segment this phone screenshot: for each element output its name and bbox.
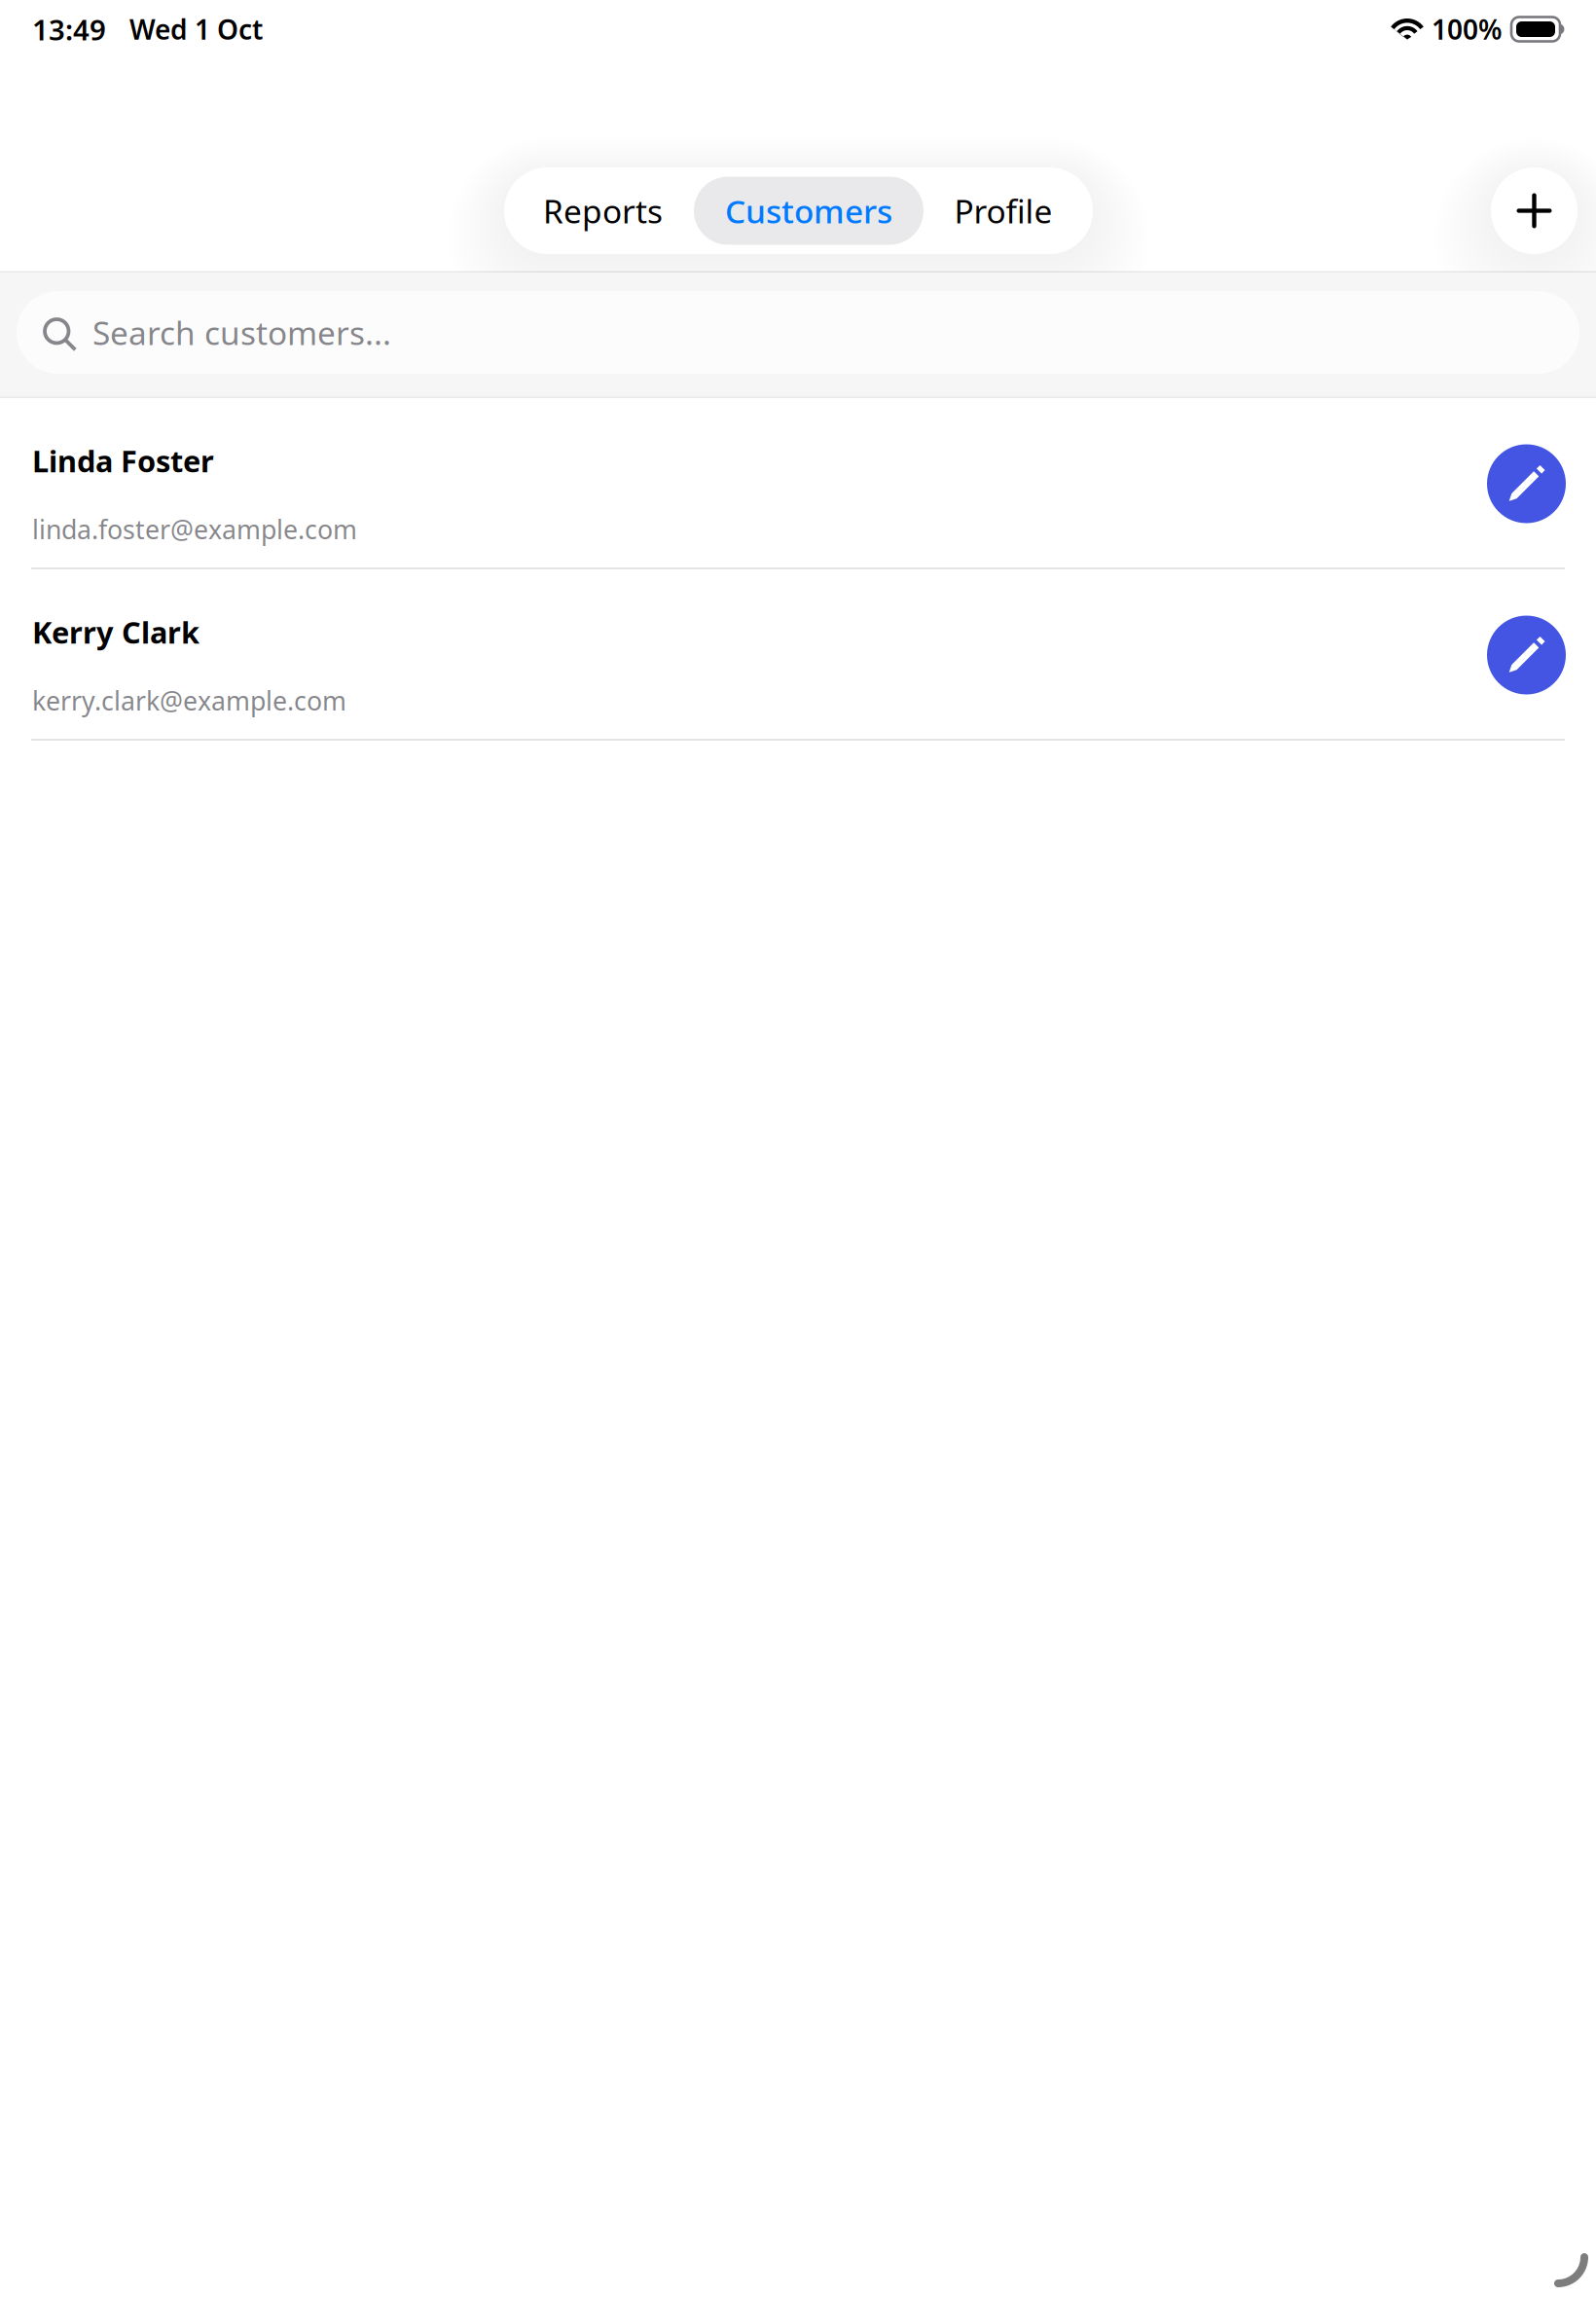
- button[interactable]: Reports: [504, 177, 694, 245]
- staticText: Profile: [954, 189, 1052, 232]
- staticText: Kerry Clark: [32, 612, 199, 652]
- button[interactable]: Add customer: [1491, 167, 1578, 254]
- staticText: Customers: [725, 189, 892, 232]
- button[interactable]: Edit Kerry Clark: [1487, 616, 1566, 694]
- staticText: Search customers...: [92, 311, 391, 354]
- staticText: Wed 1 Oct: [129, 11, 263, 47]
- button[interactable]: Search customers...: [17, 291, 1579, 374]
- button[interactable]: Customers: [694, 177, 924, 245]
- staticText: 100%: [1432, 11, 1503, 47]
- button[interactable]: Profile: [924, 177, 1093, 245]
- staticText: Linda Foster: [32, 441, 214, 481]
- staticText: Reports: [543, 189, 663, 232]
- staticText: 13:49: [32, 10, 106, 48]
- button[interactable]: Edit Linda Foster: [1487, 444, 1566, 523]
- staticText: kerry.clark@example.com: [32, 683, 346, 718]
- staticText: linda.foster@example.com: [32, 512, 357, 546]
